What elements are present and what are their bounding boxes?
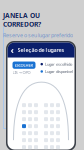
button[interactable]: Back [7,42,74,57]
staticText: Lugar disponível [45,69,73,74]
staticText: ‹ [10,44,13,56]
staticText: CORREDOR? [3,20,41,29]
staticText: LIS → OPO [12,70,30,75]
staticText: JANELA OU [3,11,40,20]
button[interactable]: ESCOLHER [12,61,35,69]
staticText: Seleção de lugares [17,46,64,54]
staticText: ESCOLHER [14,62,33,68]
staticText: Reserve o seu lugar preferido [3,32,73,39]
staticText: Lugar escolhido [45,61,72,67]
